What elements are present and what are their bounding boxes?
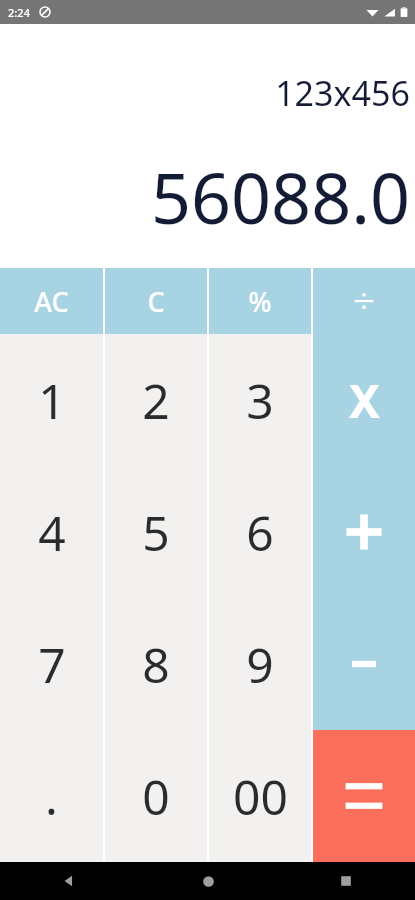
staticText: 0 <box>142 764 170 829</box>
button[interactable]: 1 <box>0 334 103 466</box>
staticText: 00 <box>233 764 288 829</box>
button[interactable]: 4 <box>0 466 103 598</box>
button[interactable]: 00 <box>209 730 311 862</box>
button[interactable]: 5 <box>105 466 207 598</box>
staticText: AC <box>34 283 69 320</box>
button[interactable]: 2 <box>105 334 207 466</box>
button[interactable]: Divide <box>313 268 415 334</box>
button[interactable]: Recent apps <box>326 862 366 900</box>
button[interactable]: 3 <box>209 334 311 466</box>
button[interactable]: C <box>105 268 207 334</box>
staticText: X <box>349 369 380 432</box>
button[interactable]: Subtract <box>313 598 415 730</box>
staticText: 6 <box>246 500 274 565</box>
staticText: 5 <box>142 500 170 565</box>
staticText: . <box>45 764 58 829</box>
button[interactable]: Home <box>188 862 228 900</box>
staticText: 9 <box>246 632 274 697</box>
button[interactable]: 8 <box>105 598 207 730</box>
staticText: 8 <box>142 632 170 697</box>
staticText: 123x456 <box>275 70 410 116</box>
staticText: C <box>147 283 165 320</box>
staticText: % <box>248 283 272 320</box>
staticText: 4 <box>38 500 66 565</box>
staticText: 3 <box>246 368 274 433</box>
staticText: 56088.0 <box>151 149 410 244</box>
button[interactable]: Equals <box>313 730 415 862</box>
staticText: 7 <box>38 632 66 697</box>
button[interactable]: Add <box>313 466 415 598</box>
button[interactable]: Back <box>49 862 89 900</box>
button[interactable]: Multiply <box>313 334 415 466</box>
staticText: 2:24 <box>8 5 30 20</box>
staticText: 1 <box>38 368 66 433</box>
staticText: 2 <box>142 368 170 433</box>
button[interactable]: % <box>209 268 311 334</box>
button[interactable]: 6 <box>209 466 311 598</box>
button[interactable]: 9 <box>209 598 311 730</box>
button[interactable]: 0 <box>105 730 207 862</box>
button[interactable]: 7 <box>0 598 103 730</box>
button[interactable]: AC <box>0 268 103 334</box>
button[interactable]: . <box>0 730 103 862</box>
